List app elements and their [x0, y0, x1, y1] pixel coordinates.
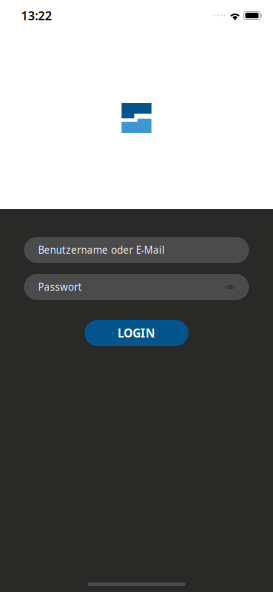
staticText: LOGIN: [117, 325, 155, 341]
button[interactable]: Benutzername oder E-Mail: [24, 237, 249, 263]
staticText: Benutzername oder E-Mail: [38, 243, 165, 257]
staticText: Passwort: [38, 280, 82, 294]
button[interactable]: LOGIN: [84, 320, 188, 346]
staticText: 13:22: [21, 7, 52, 23]
button[interactable]: Passwort: [24, 274, 249, 300]
